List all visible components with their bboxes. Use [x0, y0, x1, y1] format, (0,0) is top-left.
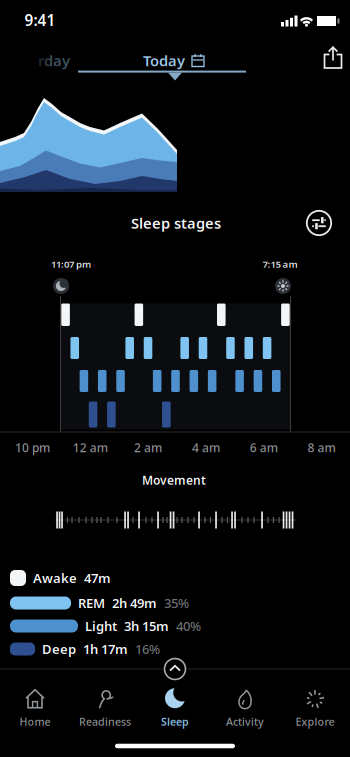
button[interactable]: Share [321, 45, 345, 71]
staticText: 12 am [73, 439, 108, 456]
button[interactable]: Today [119, 46, 229, 74]
staticText: Home [19, 714, 50, 729]
staticText: 16% [135, 640, 160, 658]
button[interactable]: Activity [210, 682, 280, 734]
button[interactable]: Explore [280, 682, 350, 734]
button[interactable]: Readiness [70, 682, 140, 734]
button[interactable]: Sleep stages options [305, 209, 333, 237]
staticText: 3h 15m [124, 617, 169, 635]
staticText: Awake [33, 569, 77, 587]
button[interactable]: Home [0, 682, 70, 734]
staticText: Sleep stages [131, 213, 221, 233]
staticText: Movement [142, 472, 206, 488]
staticText: 4 am [192, 439, 220, 456]
staticText: Readiness [79, 714, 131, 729]
staticText: rday [38, 50, 70, 70]
staticText: Deep [42, 640, 76, 658]
staticText: Sleep [161, 714, 189, 729]
staticText: 11:07 pm [51, 257, 91, 271]
staticText: 35% [164, 594, 189, 612]
staticText: Activity [226, 714, 264, 729]
staticText: 1h 17m [83, 640, 128, 658]
staticText: Explore [295, 714, 334, 729]
staticText: 7:15 am [262, 257, 297, 271]
staticText: 40% [176, 617, 201, 635]
staticText: 47m [84, 569, 111, 587]
button[interactable]: rday [24, 46, 84, 74]
staticText: 8 am [307, 439, 335, 456]
staticText: Today [143, 50, 185, 70]
staticText: Light [85, 617, 117, 635]
button[interactable]: Collapse [163, 657, 187, 681]
staticText: 9:41 [24, 10, 55, 30]
staticText: 10 pm [15, 439, 50, 456]
staticText: 6 am [250, 439, 278, 456]
staticText: REM [78, 594, 105, 612]
button[interactable]: Sleep [140, 682, 210, 734]
staticText: 2h 49m [112, 594, 157, 612]
staticText: 2 am [134, 439, 162, 456]
